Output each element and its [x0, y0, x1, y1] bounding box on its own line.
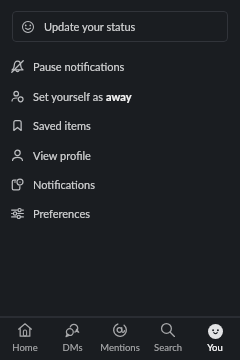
button[interactable]: Mentions — [97, 317, 143, 359]
button[interactable]: Saved items — [0, 115, 240, 135]
staticText: Notifications — [33, 178, 96, 191]
staticText: Mentions — [100, 342, 140, 353]
button[interactable]: Search — [145, 317, 191, 359]
staticText: Preferences — [33, 207, 90, 220]
button[interactable]: Preferences — [0, 203, 240, 223]
staticText: DMs — [62, 342, 83, 353]
staticText: Saved items — [33, 119, 91, 132]
staticText: Home — [12, 342, 38, 353]
button[interactable]: Home — [2, 317, 48, 359]
button[interactable]: Set yourself as — [0, 86, 240, 106]
staticText: Search — [154, 342, 182, 353]
other: Direct messages — [65, 323, 79, 337]
staticText: Set yourself as — [33, 90, 106, 103]
button[interactable]: You, profile — [192, 317, 238, 359]
other: Home — [18, 323, 32, 337]
button[interactable]: View profile — [0, 145, 240, 165]
button[interactable]: Notifications — [0, 174, 240, 194]
button[interactable]: Pause notifications — [0, 56, 240, 76]
staticText: Update your status — [44, 20, 136, 33]
staticText: Pause notifications — [33, 60, 125, 73]
other: Search — [161, 323, 175, 337]
other: Mentions — [113, 323, 127, 337]
button[interactable]: Update your status — [12, 11, 228, 42]
other: You, profile — [208, 324, 223, 339]
staticText: View profile — [33, 149, 91, 162]
button[interactable]: Direct messages — [49, 317, 95, 359]
staticText: away — [106, 90, 132, 103]
staticText: You — [207, 342, 223, 353]
